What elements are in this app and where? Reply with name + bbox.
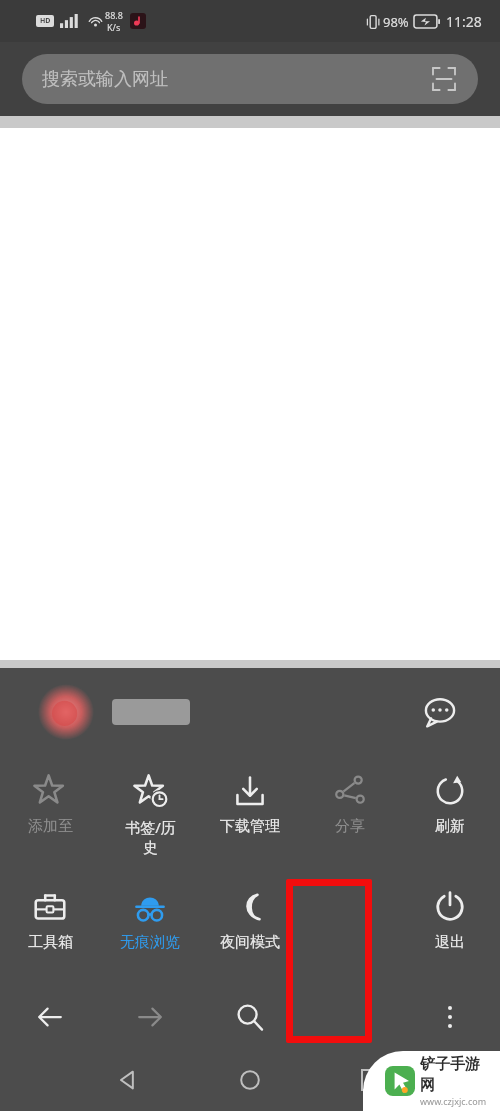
button[interactable]: 返回: [67, 1049, 189, 1111]
button[interactable]: 后退: [0, 985, 100, 1049]
button[interactable]: 标签页: [300, 985, 400, 1049]
button[interactable]: 书签/历 史: [100, 766, 200, 878]
staticText: 铲子手游网: [420, 1055, 494, 1095]
button[interactable]: 分享: [300, 766, 400, 878]
button[interactable]: 刷新: [400, 766, 500, 878]
button[interactable]: [38, 684, 190, 740]
staticText: HD: [40, 16, 51, 26]
button[interactable]: 工具箱: [0, 882, 100, 970]
staticText: 98%: [383, 13, 409, 31]
button[interactable]: 扫一扫: [428, 63, 460, 95]
button[interactable]: 更多: [400, 985, 500, 1049]
button[interactable]: 添加至: [0, 766, 100, 878]
staticText: 分享: [335, 817, 365, 836]
button[interactable]: 无痕浏览: [100, 882, 200, 970]
staticText: 夜间模式: [220, 933, 280, 952]
staticText: 书签/历 史: [125, 817, 176, 857]
button[interactable]: 搜索或输入网址: [22, 54, 478, 104]
button[interactable]: 前进: [100, 985, 200, 1049]
button[interactable]: 消息: [416, 688, 464, 736]
button[interactable]: 搜索: [200, 985, 300, 1049]
button[interactable]: 主页: [189, 1049, 311, 1111]
staticText: 88.8: [105, 9, 123, 21]
button[interactable]: 夜间模式: [200, 882, 300, 970]
staticText: 搜索或输入网址: [42, 68, 168, 91]
staticText: 刷新: [435, 817, 465, 836]
staticText: 退出: [435, 933, 465, 952]
staticText: K/s: [107, 21, 121, 33]
staticText: 无痕浏览: [120, 933, 180, 952]
staticText: 11:28: [446, 12, 482, 31]
button[interactable]: 下载管理: [200, 766, 300, 878]
staticText: 添加至: [28, 817, 73, 836]
staticText: 下载管理: [220, 817, 280, 836]
button[interactable]: 设置: [300, 882, 400, 970]
staticText: 工具箱: [28, 933, 73, 952]
button[interactable]: 退出: [400, 882, 500, 970]
button[interactable]: 最近任务: [311, 1049, 433, 1111]
staticText: www.czjxjc.com: [420, 1095, 487, 1107]
